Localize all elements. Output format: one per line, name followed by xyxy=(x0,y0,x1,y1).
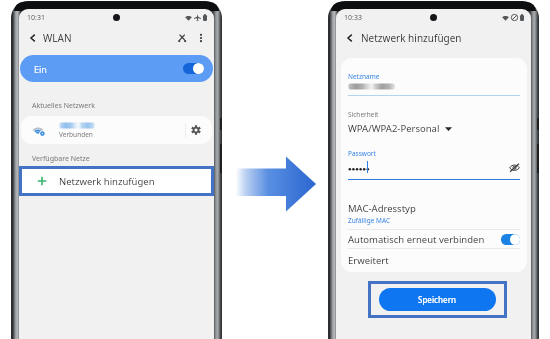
staticText: WLAN xyxy=(43,31,72,45)
staticText: Ein xyxy=(34,63,47,75)
staticText: Netzname xyxy=(348,72,380,81)
button[interactable]: Back xyxy=(336,28,531,48)
staticText: Zufällige MAC xyxy=(348,216,391,225)
button[interactable]: Show password xyxy=(509,162,520,173)
button[interactable]: Erweitert xyxy=(348,249,520,272)
button[interactable]: MAC-Adresstyp xyxy=(348,202,520,225)
staticText: MAC-Adresstyp xyxy=(348,202,416,215)
button[interactable]: Automatisch erneut verbinden xyxy=(348,230,520,248)
staticText: Verbunden xyxy=(59,130,93,139)
button[interactable]: Verbunden xyxy=(21,116,212,144)
staticText: Speichern xyxy=(418,294,457,305)
staticText: Passwort xyxy=(348,149,376,158)
staticText: 10:31 xyxy=(27,13,45,23)
button[interactable]: Back xyxy=(19,28,214,48)
button[interactable]: Netzwerk hinzufügen xyxy=(22,169,211,193)
staticText: Aktuelles Netzwerk xyxy=(32,101,95,111)
staticText: Erweitert xyxy=(348,254,389,267)
staticText: Automatisch erneut verbinden xyxy=(348,233,485,246)
staticText: Verfügbare Netze xyxy=(32,154,90,164)
button[interactable]: Settings xyxy=(191,125,201,135)
button[interactable]: Speichern xyxy=(379,288,496,311)
button[interactable]: WPA/WPA2-Personal xyxy=(348,122,452,135)
staticText: Sicherheit xyxy=(348,110,379,119)
staticText: WPA/WPA2-Personal xyxy=(348,122,440,135)
button[interactable]: More options xyxy=(199,33,203,43)
button[interactable]: Back xyxy=(28,33,38,43)
button[interactable]: Share xyxy=(178,34,186,42)
staticText: 10:33 xyxy=(344,13,362,23)
staticText: Netzwerk hinzufügen xyxy=(59,175,155,188)
staticText: Netzwerk hinzufügen xyxy=(361,31,462,45)
button[interactable]: Back xyxy=(345,33,355,43)
button[interactable]: Ein xyxy=(20,55,213,82)
